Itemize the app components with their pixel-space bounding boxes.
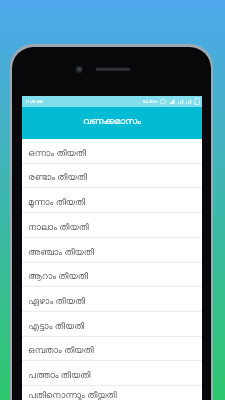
staticText: വണക്കമാസം — [83, 117, 141, 126]
staticText: ആറാം തീയതി — [28, 269, 88, 281]
button[interactable]: നാലാം തീയതി — [22, 213, 202, 238]
button[interactable]: ഒമ്പതാം തീയതി — [22, 337, 202, 361]
staticText: ഒന്നാം തീയതി — [28, 146, 86, 158]
button[interactable]: രണ്ടാം തീയതി — [22, 164, 202, 188]
staticText: പത്താം തീയതി — [28, 368, 91, 380]
staticText: 54.2K/s — [143, 99, 158, 105]
staticText: അഞ്ചാം തീയതി — [28, 245, 94, 257]
staticText: ഏഴാം തീയതി — [28, 294, 86, 306]
button[interactable]: ഏഴാം തീയതി — [22, 287, 202, 312]
button[interactable]: മൂന്നാം തീയതി — [22, 188, 202, 213]
button[interactable]: അഞ്ചാം തീയതി — [22, 238, 202, 263]
staticText: 11:25 AM — [25, 99, 44, 105]
staticText: പതിനൊന്നാം തീയതി — [28, 388, 117, 400]
button[interactable]: ഒന്നാം തീയതി — [22, 139, 202, 164]
button[interactable]: പന്ത്രണ്ടാം തീയതി — [22, 388, 202, 400]
button[interactable]: പതിനൊന്നാം തീയതി — [22, 381, 202, 400]
staticText: പന്ത്രണ്ടാം തീയതി — [28, 395, 101, 400]
button[interactable]: പത്താം തീയതി — [22, 361, 202, 386]
button[interactable]: എട്ടാം തീയതി — [22, 312, 202, 337]
staticText: നാലാം തീയതി — [28, 220, 89, 232]
staticText: എട്ടാം തീയതി — [28, 319, 85, 331]
button[interactable]: ആറാം തീയതി — [22, 263, 202, 287]
staticText: രണ്ടാം തീയതി — [28, 170, 87, 182]
staticText: മൂന്നാം തീയതി — [28, 195, 86, 207]
staticText: ഒമ്പതാം തീയതി — [28, 343, 94, 355]
